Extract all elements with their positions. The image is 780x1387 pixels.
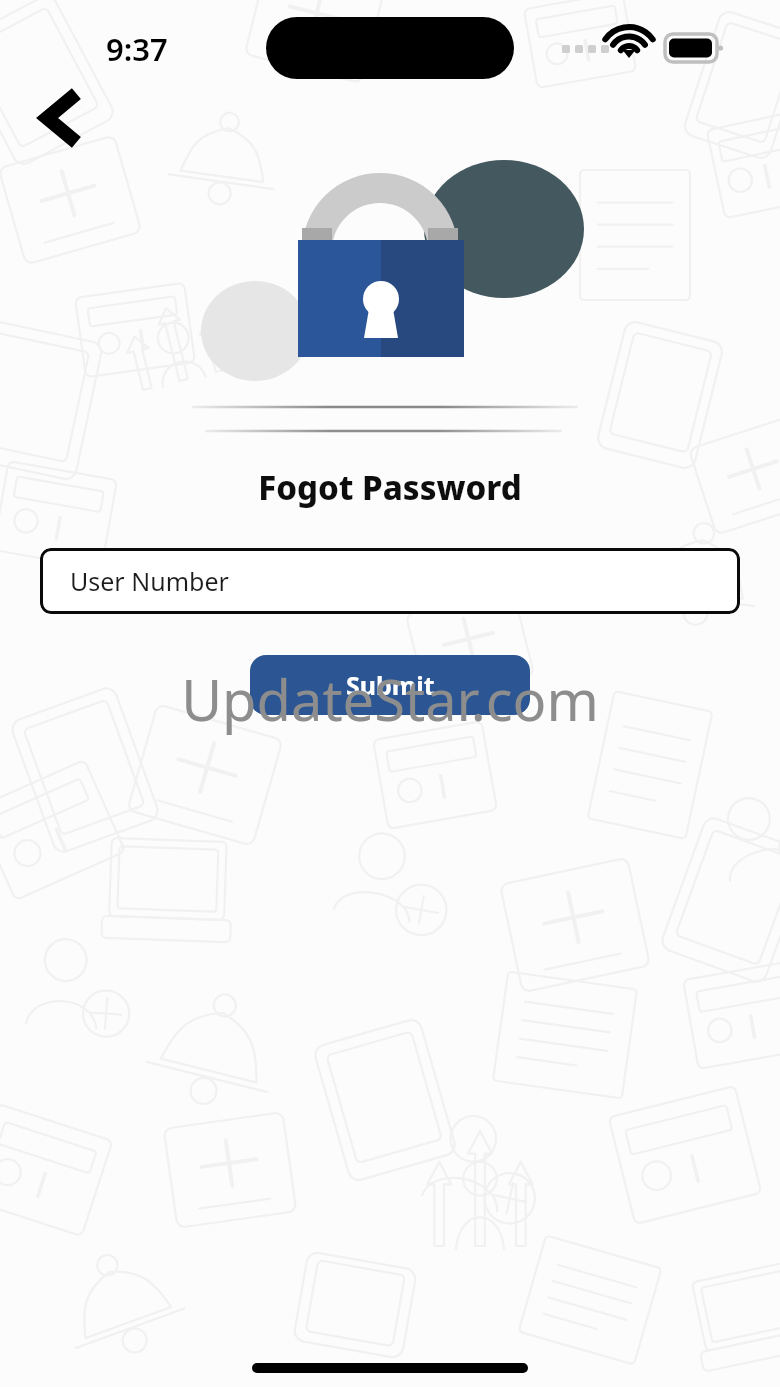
staticText: User Number (70, 564, 229, 598)
staticText: UpdateStar.com (0, 661, 780, 737)
button[interactable]: User Number (40, 548, 740, 614)
button[interactable]: Submit (250, 655, 530, 715)
staticText: Fogot Password (0, 465, 780, 510)
staticText: 9:37 (106, 28, 168, 70)
staticText: Submit (346, 668, 435, 702)
button[interactable]: Back (24, 84, 92, 152)
